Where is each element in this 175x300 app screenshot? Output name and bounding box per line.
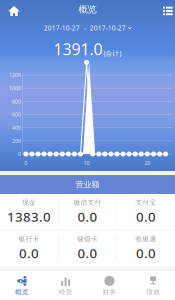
staticText: 0.0 bbox=[77, 244, 97, 262]
staticText: 1383.0 bbox=[7, 208, 51, 225]
button[interactable]: Menu bbox=[147, 0, 175, 20]
staticText: 600 bbox=[12, 111, 21, 118]
button[interactable]: 2017-10-27 - 2017-10-27 bbox=[0, 21, 175, 35]
staticText: 微信支付 bbox=[73, 199, 101, 207]
staticText: 20 bbox=[144, 159, 150, 167]
staticText: 0 bbox=[24, 159, 27, 167]
button[interactable]: 概览 bbox=[0, 271, 44, 300]
staticText: 200 bbox=[12, 137, 21, 144]
staticText: 支付宝 bbox=[135, 199, 156, 207]
staticText: 10 bbox=[84, 159, 90, 167]
staticText: 1200 bbox=[9, 71, 21, 79]
staticText: 绩效 bbox=[146, 288, 160, 296]
staticText: 0.0 bbox=[77, 208, 97, 225]
staticText: 营业额 bbox=[75, 180, 99, 189]
staticText: 概览 bbox=[15, 288, 29, 296]
staticText: 1391.0 bbox=[53, 38, 102, 60]
staticText: 现金 bbox=[22, 199, 36, 207]
staticText: 1000 bbox=[9, 85, 21, 92]
button[interactable]: 财务 bbox=[87, 271, 131, 300]
staticText: 800 bbox=[12, 98, 21, 105]
staticText: 0.0 bbox=[136, 244, 156, 262]
staticText: 储值卡 bbox=[77, 235, 98, 243]
staticText: 经营 bbox=[59, 288, 73, 296]
staticText: 财务 bbox=[102, 288, 116, 296]
staticText: 0.0 bbox=[136, 208, 156, 225]
staticText: 收银通 bbox=[135, 235, 156, 243]
staticText: 2017-10-27 - 2017-10-27 bbox=[44, 24, 126, 32]
staticText: 银行卡 bbox=[18, 235, 39, 243]
staticText: 概览 bbox=[78, 4, 96, 15]
staticText: 0.0 bbox=[19, 244, 39, 262]
button[interactable]: 绩效 bbox=[131, 271, 175, 300]
staticText: 0 bbox=[18, 150, 21, 158]
staticText: 400 bbox=[12, 124, 21, 131]
button[interactable]: 经营 bbox=[44, 271, 88, 300]
button[interactable]: Home bbox=[0, 0, 28, 20]
staticText: (合计) bbox=[103, 49, 121, 58]
